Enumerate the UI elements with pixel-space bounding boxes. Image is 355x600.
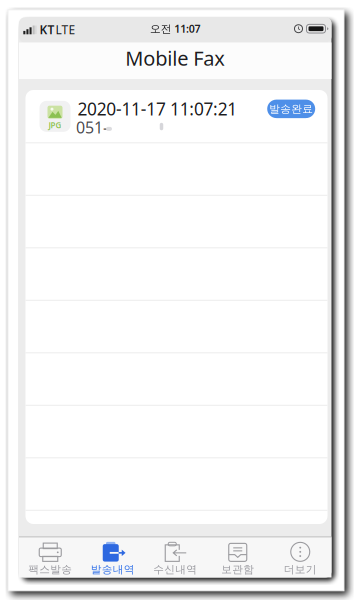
button[interactable]: 보관함 xyxy=(207,537,269,578)
button[interactable]: 발송내역 xyxy=(82,537,144,578)
staticText: 보관함 xyxy=(221,563,254,576)
staticText: 051- xyxy=(76,117,108,138)
staticText: 발송완료 xyxy=(269,102,313,115)
staticText: 2020-11-17 11:07:21 xyxy=(77,97,237,120)
staticText: 팩스발송 xyxy=(28,563,72,576)
staticText: 수신내역 xyxy=(153,563,197,576)
button[interactable]: 더보기 xyxy=(269,537,331,578)
staticText: 오전 11:07 xyxy=(150,21,201,36)
staticText: 더보기 xyxy=(284,563,317,576)
staticText: JPG xyxy=(48,120,61,130)
staticText: LTE xyxy=(55,22,75,37)
staticText: Mobile Fax xyxy=(125,45,225,71)
button[interactable]: 팩스발송 xyxy=(19,537,81,578)
staticText: KT xyxy=(39,22,54,37)
button[interactable]: JPG xyxy=(25,90,327,142)
button[interactable]: 수신내역 xyxy=(144,537,206,578)
staticText: 발송내역 xyxy=(91,563,135,576)
